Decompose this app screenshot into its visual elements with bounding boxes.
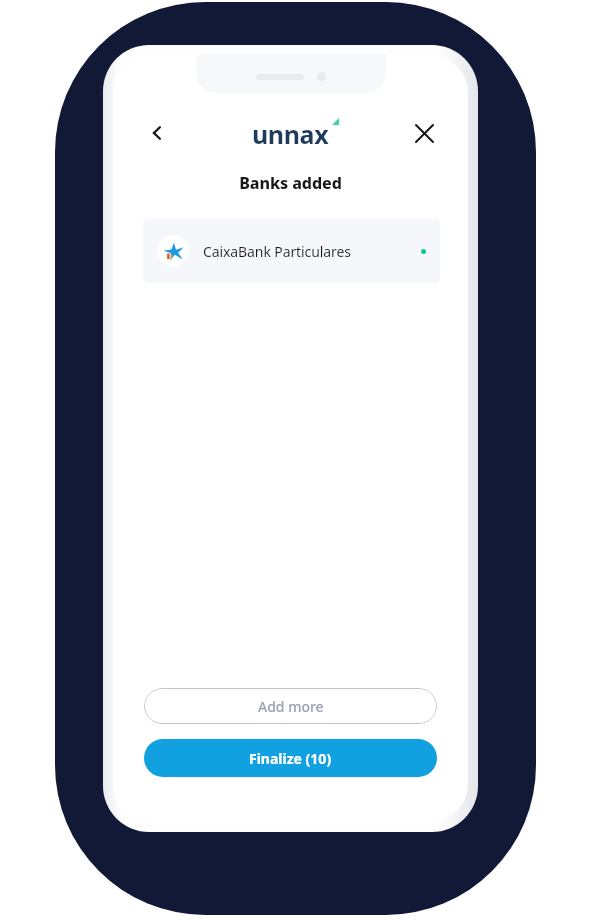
staticText: Finalize (10) bbox=[249, 749, 332, 768]
button[interactable]: Finalize (10) bbox=[144, 739, 437, 777]
button[interactable]: Back bbox=[139, 115, 175, 151]
button[interactable]: CaixaBank Particulares bbox=[143, 219, 440, 283]
staticText: Add more bbox=[258, 697, 324, 716]
staticText: CaixaBank Particulares bbox=[203, 242, 351, 261]
button[interactable]: Close bbox=[406, 115, 442, 151]
staticText: unnax bbox=[252, 117, 329, 151]
staticText: Banks added bbox=[113, 172, 468, 194]
button[interactable]: Add more bbox=[144, 688, 437, 724]
